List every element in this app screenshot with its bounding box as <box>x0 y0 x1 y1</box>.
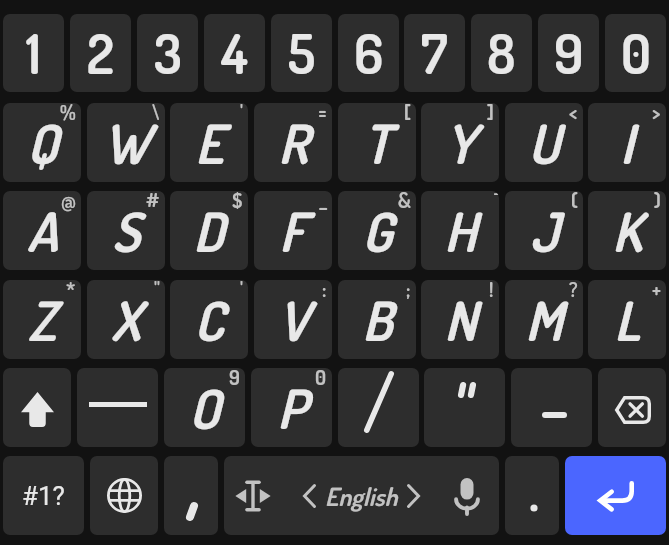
staticText: W <box>103 109 150 177</box>
staticText: N <box>444 286 477 354</box>
button[interactable]: Underscore <box>77 368 158 447</box>
staticText: > <box>652 103 661 124</box>
button[interactable]: D <box>170 191 248 270</box>
staticText: Q <box>27 109 58 177</box>
staticText: I <box>620 109 634 177</box>
staticText: ( <box>571 191 578 212</box>
staticText: E <box>195 109 224 177</box>
button[interactable]: 4 <box>204 14 265 92</box>
button[interactable]: Change language <box>90 456 158 535</box>
staticText: 6 <box>354 19 384 87</box>
button[interactable]: Shift <box>3 368 71 447</box>
button[interactable]: 3 <box>137 14 198 92</box>
staticText: S <box>112 197 140 265</box>
staticText: U <box>528 109 560 177</box>
staticText: 8 <box>487 19 516 87</box>
button[interactable]: R <box>254 103 332 182</box>
staticText: J <box>530 197 559 265</box>
button[interactable]: M <box>505 280 583 359</box>
staticText: 0 <box>315 368 327 389</box>
staticText: T <box>363 109 391 177</box>
button[interactable]: T <box>338 103 416 182</box>
staticText: : <box>322 280 327 301</box>
staticText: V <box>278 286 309 354</box>
button[interactable]: K <box>588 191 666 270</box>
button[interactable]: Enter <box>565 456 666 535</box>
button[interactable]: B <box>338 280 416 359</box>
button[interactable]: W <box>87 103 165 182</box>
staticText: ] <box>487 103 494 124</box>
button[interactable]: J <box>505 191 583 270</box>
button[interactable] <box>338 368 419 447</box>
staticText: ? <box>569 280 578 301</box>
staticText: 4 <box>221 19 248 87</box>
staticText: Z <box>28 286 56 354</box>
staticText: L <box>614 286 640 354</box>
button[interactable]: 9 <box>538 14 599 92</box>
button[interactable]: V <box>254 280 332 359</box>
staticText: G <box>362 197 393 265</box>
staticText: 0 <box>621 19 651 87</box>
staticText: ! <box>489 280 494 301</box>
staticText: + <box>652 280 661 301</box>
staticText: B <box>362 286 393 354</box>
staticText: X <box>111 286 141 354</box>
button[interactable]: Y <box>421 103 499 182</box>
button[interactable]: Backspace <box>598 368 666 447</box>
staticText: R <box>278 109 309 177</box>
staticText: English <box>325 480 398 512</box>
button[interactable]: L <box>588 280 666 359</box>
staticText: H <box>444 197 477 265</box>
staticText: P <box>277 374 307 442</box>
staticText: " <box>154 280 160 301</box>
staticText: 2 <box>87 19 114 87</box>
staticText: D <box>193 197 225 265</box>
staticText: < <box>569 103 578 124</box>
button[interactable] <box>505 456 559 535</box>
button[interactable]: #1? <box>3 456 84 535</box>
staticText: Y <box>445 109 476 177</box>
staticText: ' <box>240 103 243 124</box>
button[interactable]: H <box>421 191 499 270</box>
staticText: 1 <box>26 19 41 87</box>
staticText: O <box>189 374 220 442</box>
staticText: #1? <box>22 481 65 511</box>
button[interactable]: 8 <box>471 14 532 92</box>
button[interactable]: 2 <box>70 14 131 92</box>
button[interactable]: E <box>170 103 248 182</box>
staticText: [ <box>404 103 411 124</box>
button[interactable]: G <box>338 191 416 270</box>
staticText: ; <box>406 280 411 301</box>
button[interactable]: F <box>254 191 332 270</box>
staticText: $ <box>232 191 243 212</box>
button[interactable]: N <box>421 280 499 359</box>
staticText: * <box>66 280 76 301</box>
button[interactable]: S <box>87 191 165 270</box>
button[interactable]: 1 <box>3 14 64 92</box>
button[interactable] <box>424 368 505 447</box>
button[interactable]: Q <box>3 103 81 182</box>
button[interactable]: 7 <box>404 14 465 92</box>
staticText: ' <box>240 280 243 301</box>
button[interactable]: C <box>170 280 248 359</box>
staticText: \ <box>152 103 160 124</box>
button[interactable]: O <box>164 368 245 447</box>
button[interactable]: X <box>87 280 165 359</box>
button[interactable] <box>164 456 218 535</box>
staticText: # <box>146 191 160 212</box>
button[interactable]: Z <box>3 280 81 359</box>
staticText: M <box>525 286 563 354</box>
staticText: C <box>194 286 224 354</box>
button[interactable] <box>511 368 592 447</box>
button[interactable]: U <box>505 103 583 182</box>
staticText: 9 <box>554 19 584 87</box>
button[interactable]: 5 <box>271 14 332 92</box>
button[interactable]: A <box>3 191 81 270</box>
button[interactable]: English <box>224 456 499 535</box>
staticText: A <box>27 197 58 265</box>
button[interactable]: 0 <box>605 14 666 92</box>
button[interactable]: I <box>588 103 666 182</box>
staticText: % <box>60 103 76 124</box>
button[interactable]: P <box>251 368 332 447</box>
button[interactable]: 6 <box>338 14 399 92</box>
